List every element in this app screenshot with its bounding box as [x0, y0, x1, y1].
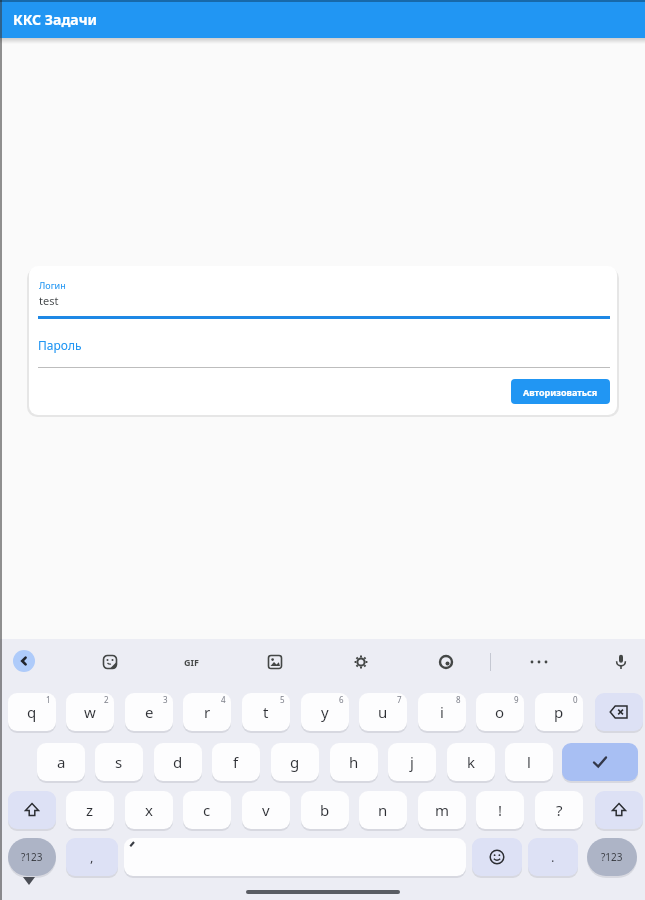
staticText: !: [498, 800, 503, 820]
staticText: q: [27, 702, 37, 722]
staticText: h: [349, 752, 359, 772]
staticText: 0: [573, 694, 578, 705]
button[interactable]: ,: [66, 838, 118, 876]
staticText: p: [554, 702, 564, 722]
staticText: 7: [397, 694, 402, 705]
button[interactable]: p: [535, 693, 583, 731]
button[interactable]: [595, 693, 643, 731]
button[interactable]: h: [330, 743, 378, 781]
button[interactable]: t: [242, 693, 290, 731]
button[interactable]: e: [125, 693, 173, 731]
staticText: .: [551, 848, 555, 866]
staticText: k: [467, 752, 476, 772]
staticText: t: [263, 702, 269, 722]
staticText: ККС Задачи: [13, 10, 98, 29]
staticText: ?123: [601, 850, 623, 864]
staticText: e: [145, 702, 154, 722]
button[interactable]: Авторизоваться: [511, 379, 610, 404]
staticText: n: [378, 800, 388, 820]
button[interactable]: s: [95, 743, 143, 781]
button[interactable]: l: [505, 743, 553, 781]
staticText: m: [435, 800, 450, 820]
button[interactable]: w: [66, 693, 114, 731]
staticText: ?: [556, 800, 563, 820]
button[interactable]: o: [476, 693, 524, 731]
button[interactable]: j: [388, 743, 436, 781]
staticText: j: [410, 752, 414, 772]
staticText: Логин: [39, 279, 66, 291]
button[interactable]: [595, 791, 643, 829]
staticText: w: [84, 702, 96, 722]
staticText: Авторизоваться: [523, 386, 598, 398]
staticText: 8: [456, 694, 461, 705]
button[interactable]: n: [359, 791, 407, 829]
staticText: ,: [90, 848, 94, 866]
staticText: i: [440, 702, 444, 722]
button[interactable]: r: [183, 693, 231, 731]
staticText: l: [527, 752, 531, 772]
button[interactable]: ?123: [8, 838, 56, 876]
button[interactable]: [472, 838, 522, 876]
staticText: x: [145, 800, 153, 820]
staticText: b: [320, 800, 330, 820]
button[interactable]: q: [8, 693, 56, 731]
staticText: r: [204, 702, 211, 722]
button[interactable]: k: [447, 743, 495, 781]
staticText: test: [39, 293, 59, 308]
button[interactable]: y: [301, 693, 349, 731]
staticText: f: [233, 752, 239, 772]
button[interactable]: z: [66, 791, 114, 829]
button[interactable]: x: [125, 791, 173, 829]
staticText: d: [173, 752, 183, 772]
button[interactable]: !: [476, 791, 524, 829]
staticText: 5: [280, 694, 285, 705]
staticText: ?123: [21, 850, 43, 864]
staticText: Пароль: [38, 337, 82, 353]
staticText: v: [262, 800, 270, 820]
staticText: 1: [46, 694, 51, 705]
staticText: 3: [163, 694, 168, 705]
button[interactable]: u: [359, 693, 407, 731]
button[interactable]: d: [154, 743, 202, 781]
staticText: a: [57, 752, 66, 772]
button[interactable]: ?: [535, 791, 583, 829]
staticText: 4: [221, 694, 226, 705]
button[interactable]: ?123: [587, 838, 637, 876]
button[interactable]: [8, 791, 56, 829]
button[interactable]: .: [528, 838, 578, 876]
button[interactable]: c: [183, 791, 231, 829]
button[interactable]: i: [418, 693, 466, 731]
staticText: GIF: [184, 656, 199, 668]
staticText: y: [321, 702, 329, 722]
button[interactable]: [13, 650, 35, 672]
button[interactable]: GIF: [178, 650, 204, 674]
button[interactable]: [124, 838, 466, 876]
button[interactable]: v: [242, 791, 290, 829]
button[interactable]: b: [301, 791, 349, 829]
staticText: 6: [339, 694, 344, 705]
button[interactable]: f: [212, 743, 260, 781]
staticText: o: [495, 702, 505, 722]
staticText: s: [115, 752, 123, 772]
staticText: g: [290, 752, 300, 772]
staticText: c: [203, 800, 211, 820]
button[interactable]: m: [418, 791, 466, 829]
button[interactable]: a: [37, 743, 85, 781]
staticText: 9: [514, 694, 519, 705]
button[interactable]: [562, 743, 638, 781]
staticText: z: [86, 800, 94, 820]
staticText: u: [378, 702, 388, 722]
staticText: 2: [104, 694, 109, 705]
button[interactable]: g: [271, 743, 319, 781]
